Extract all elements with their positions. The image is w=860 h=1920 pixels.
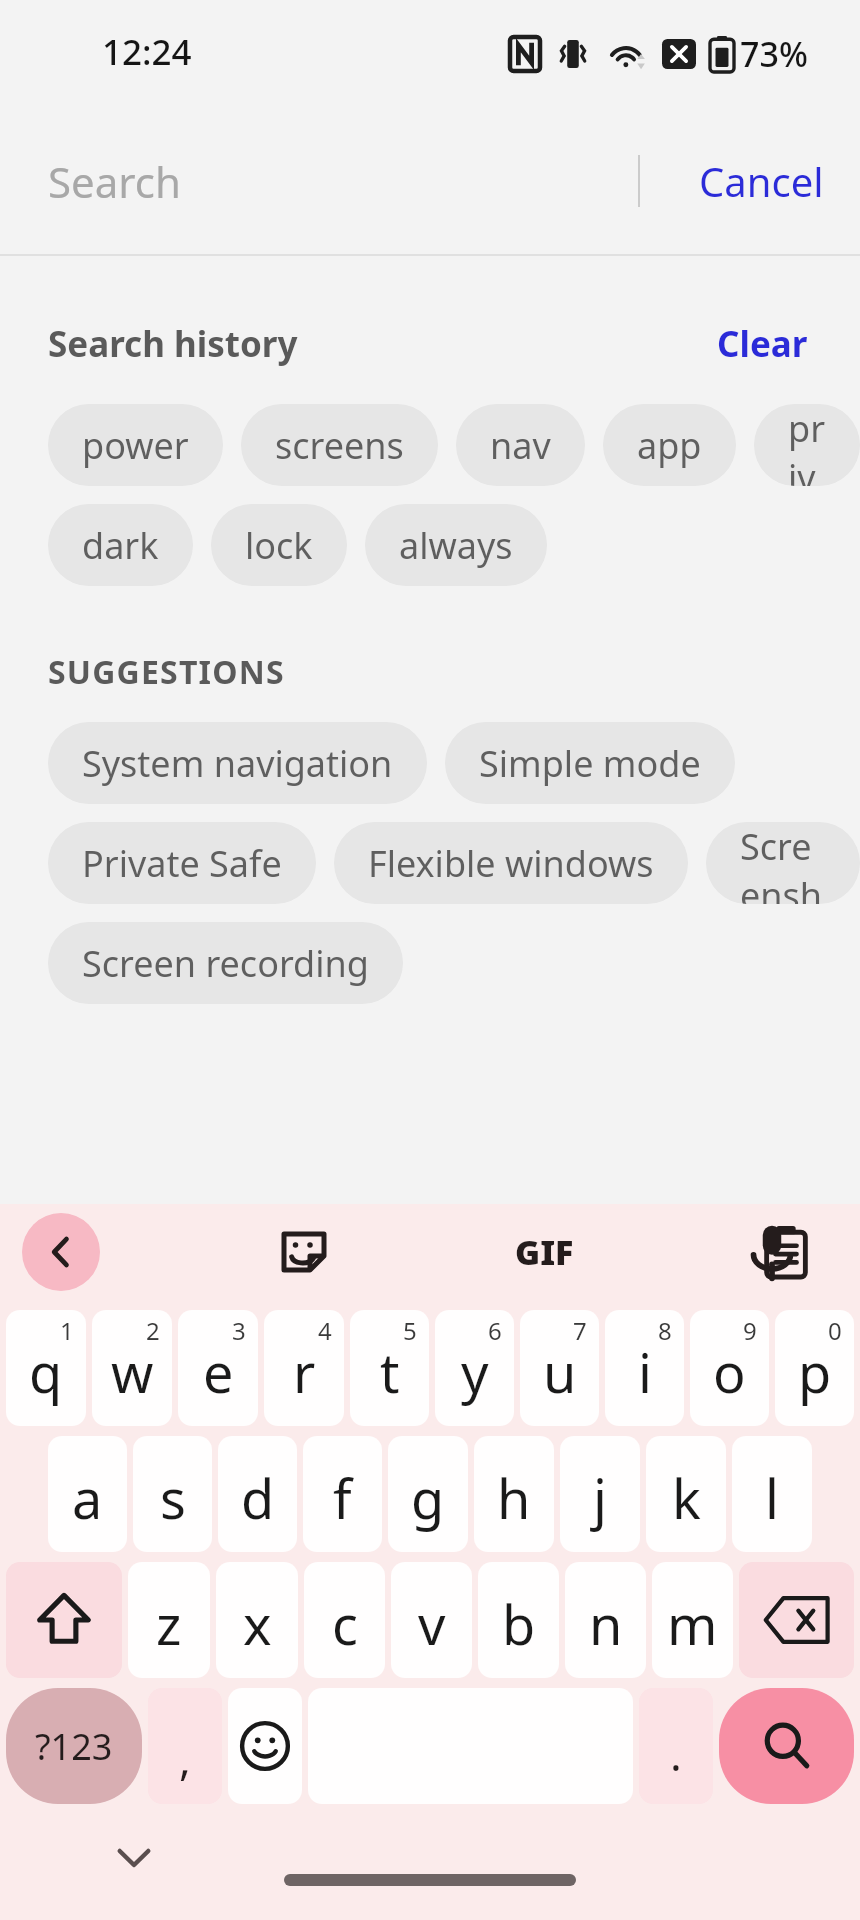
- button[interactable]: f: [303, 1436, 382, 1552]
- staticText: GIF: [515, 1229, 574, 1275]
- staticText: lock: [245, 521, 313, 570]
- button[interactable]: Clipboard: [742, 1208, 830, 1296]
- staticText: h: [497, 1461, 531, 1535]
- staticText: g: [411, 1461, 445, 1535]
- staticText: o: [713, 1335, 746, 1409]
- button[interactable]: Simple mode: [445, 722, 735, 804]
- button[interactable]: Search: [719, 1688, 854, 1804]
- button[interactable]: Voice input: [728, 1208, 816, 1296]
- button[interactable]: Flexible windows: [334, 822, 688, 904]
- staticText: v: [418, 1587, 446, 1661]
- button[interactable]: a: [48, 1436, 127, 1552]
- button[interactable]: n: [565, 1562, 646, 1678]
- button[interactable]: Stickers: [260, 1208, 348, 1296]
- button[interactable]: Private Safe: [48, 822, 316, 904]
- button[interactable]: m: [652, 1562, 733, 1678]
- button[interactable]: ,: [148, 1688, 222, 1804]
- button[interactable]: i: [605, 1310, 684, 1426]
- staticText: p: [798, 1335, 832, 1409]
- button[interactable]: always: [365, 504, 547, 586]
- staticText: 0: [828, 1314, 842, 1347]
- staticText: f: [333, 1461, 352, 1535]
- staticText: n: [589, 1587, 623, 1661]
- button[interactable]: .: [639, 1688, 713, 1804]
- staticText: 73%: [740, 31, 808, 77]
- button[interactable]: y: [435, 1310, 514, 1426]
- button[interactable]: l: [732, 1436, 812, 1552]
- button[interactable]: ?123: [6, 1688, 142, 1804]
- staticText: 2: [146, 1314, 160, 1347]
- staticText: e: [203, 1335, 234, 1409]
- staticText: 1: [60, 1314, 74, 1347]
- button[interactable]: Emoji: [228, 1688, 302, 1804]
- staticText: q: [29, 1335, 63, 1409]
- button[interactable]: x: [216, 1562, 298, 1678]
- button[interactable]: dark: [48, 504, 193, 586]
- staticText: i: [638, 1335, 652, 1409]
- staticText: 9: [743, 1314, 757, 1347]
- button[interactable]: Cancel: [663, 134, 860, 228]
- staticText: w: [111, 1335, 154, 1409]
- button[interactable]: screens: [241, 404, 438, 486]
- staticText: always: [399, 521, 513, 570]
- staticText: 3: [232, 1314, 246, 1347]
- button[interactable]: g: [388, 1436, 468, 1552]
- staticText: screens: [275, 421, 404, 470]
- staticText: dark: [82, 521, 159, 570]
- button[interactable]: Shift: [6, 1562, 122, 1678]
- button[interactable]: System navigation: [48, 722, 427, 804]
- staticText: 8: [658, 1314, 672, 1347]
- staticText: Private Safe: [82, 839, 282, 888]
- button[interactable]: z: [128, 1562, 210, 1678]
- button[interactable]: w: [92, 1310, 172, 1426]
- button[interactable]: j: [560, 1436, 640, 1552]
- button[interactable]: k: [646, 1436, 726, 1552]
- button[interactable]: o: [690, 1310, 769, 1426]
- button[interactable]: lock: [211, 504, 347, 586]
- staticText: .: [670, 1724, 682, 1784]
- button[interactable]: Hide keyboard: [100, 1824, 168, 1892]
- button[interactable]: priv: [754, 404, 860, 486]
- staticText: y: [461, 1335, 489, 1409]
- button[interactable]: app: [603, 404, 736, 486]
- staticText: r: [293, 1335, 316, 1409]
- button[interactable]: Clear: [705, 308, 820, 380]
- button[interactable]: t: [350, 1310, 429, 1426]
- button[interactable]: h: [474, 1436, 554, 1552]
- button[interactable]: v: [391, 1562, 472, 1678]
- staticText: 6: [488, 1314, 502, 1347]
- staticText: power: [82, 421, 189, 470]
- button[interactable]: u: [520, 1310, 599, 1426]
- button[interactable]: nav: [456, 404, 585, 486]
- button[interactable]: r: [264, 1310, 344, 1426]
- button[interactable]: p: [775, 1310, 854, 1426]
- staticText: Flexible windows: [368, 839, 654, 888]
- staticText: app: [637, 421, 702, 470]
- staticText: j: [593, 1461, 607, 1535]
- button[interactable]: Backspace: [739, 1562, 854, 1678]
- staticText: t: [380, 1335, 400, 1409]
- staticText: u: [543, 1335, 577, 1409]
- staticText: Search history: [48, 320, 298, 368]
- button[interactable]: c: [304, 1562, 385, 1678]
- button[interactable]: b: [478, 1562, 559, 1678]
- button[interactable]: s: [133, 1436, 212, 1552]
- staticText: Search: [48, 153, 181, 210]
- staticText: b: [502, 1587, 536, 1661]
- staticText: priv: [788, 404, 826, 486]
- button[interactable]: Screen recording: [48, 922, 403, 1004]
- button[interactable]: GIF: [500, 1208, 588, 1296]
- staticText: 12:24: [102, 28, 192, 76]
- button[interactable]: q: [6, 1310, 86, 1426]
- button[interactable]: Back: [22, 1213, 100, 1291]
- staticText: Cancel: [699, 154, 824, 208]
- staticText: SUGGESTIONS: [48, 650, 285, 694]
- button[interactable]: power: [48, 404, 223, 486]
- button[interactable]: d: [218, 1436, 297, 1552]
- button[interactable]: e: [178, 1310, 258, 1426]
- staticText: Screenshot: [740, 822, 826, 904]
- staticText: Simple mode: [479, 739, 701, 788]
- button[interactable]: Screenshot: [706, 822, 860, 904]
- staticText: m: [667, 1587, 718, 1661]
